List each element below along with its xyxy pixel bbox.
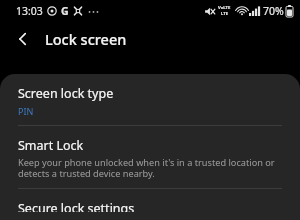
staticText: Screen lock type (18, 85, 114, 102)
button[interactable]: Navigate up (9, 25, 37, 53)
staticText: Keep your phone unlocked when it's in a … (18, 156, 284, 180)
button[interactable]: Screen lock type (0, 74, 300, 125)
button[interactable]: Smart Lock (0, 126, 300, 188)
staticText: G (61, 4, 69, 18)
button[interactable]: Secure lock settings (0, 189, 300, 220)
staticText: PIN (18, 105, 34, 117)
staticText: Lock screen (45, 29, 127, 49)
staticText: LTE (221, 11, 229, 17)
staticText: VoLTE (218, 5, 231, 11)
staticText: Smart Lock (18, 137, 84, 154)
staticText: Secure lock settings (18, 200, 135, 212)
staticText: 13:03 (16, 4, 43, 18)
staticText: 70% (263, 4, 284, 18)
